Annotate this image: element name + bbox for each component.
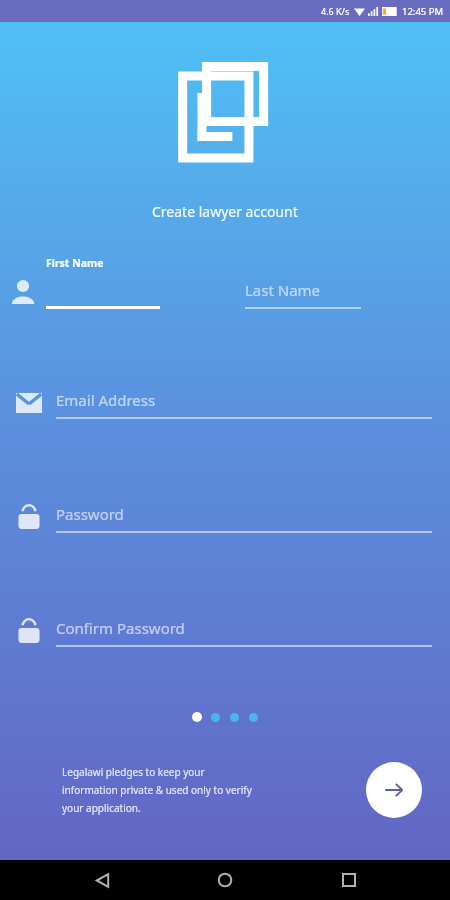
other: Name (10, 280, 36, 304)
button[interactable]: Recents (327, 860, 371, 900)
staticText: 4.6 K/s (321, 5, 350, 17)
staticText: Confirm Password (56, 618, 185, 638)
button[interactable]: Email (12, 390, 432, 419)
button[interactable]: Password (12, 618, 432, 647)
other: Email (16, 393, 42, 413)
button[interactable]: Home (203, 860, 247, 900)
staticText: Password (56, 504, 124, 524)
staticText: Create lawyer account (152, 202, 298, 221)
staticText: information private & used only to verif… (62, 783, 252, 797)
other: Password (17, 504, 41, 530)
button[interactable]: Password (12, 504, 432, 533)
button[interactable]: Last Name (245, 256, 361, 309)
staticText: Legalawi pledges to keep your (62, 765, 205, 779)
button[interactable]: First Name (46, 256, 160, 309)
staticText: First Name (46, 256, 104, 270)
staticText: Email Address (56, 390, 156, 410)
staticText: 12:45 PM (402, 5, 444, 18)
button[interactable]: Back (80, 860, 124, 900)
button[interactable]: Next (366, 762, 422, 818)
staticText: your application. (62, 801, 141, 815)
other: Password (17, 618, 41, 644)
staticText: Last Name (245, 280, 321, 300)
